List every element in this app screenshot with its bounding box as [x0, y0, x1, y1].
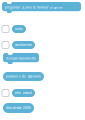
staticText: de	[22, 75, 26, 78]
staticText: y esperar	[50, 6, 63, 9]
staticText: reiniciar cronómetro	[6, 57, 36, 60]
button[interactable]: ruido	[12, 25, 26, 33]
staticText: cronómetro	[15, 43, 32, 47]
staticText: posición x	[6, 75, 20, 78]
staticText: ruido	[15, 27, 23, 31]
button[interactable]: preguntar	[2, 2, 81, 13]
staticText: preguntar	[5, 6, 20, 9]
button[interactable]: reiniciar cronómetro	[3, 53, 39, 64]
staticText: ¿Cómo te llamas?	[22, 6, 48, 9]
button[interactable]: Mostrar en el escenario	[2, 41, 9, 48]
button[interactable]: posición x	[3, 72, 44, 81]
button[interactable]: Mostrar en el escenario	[2, 89, 9, 96]
staticText: días desde 2000	[6, 106, 31, 110]
button[interactable]: Mostrar en el escenario	[2, 25, 9, 32]
button[interactable]: año	[12, 89, 35, 97]
button[interactable]: cronómetro	[12, 41, 35, 49]
staticText: año	[15, 91, 21, 95]
staticText: Escenario	[28, 75, 41, 78]
button[interactable]: días desde 2000	[3, 103, 34, 113]
staticText: actual	[23, 91, 32, 95]
